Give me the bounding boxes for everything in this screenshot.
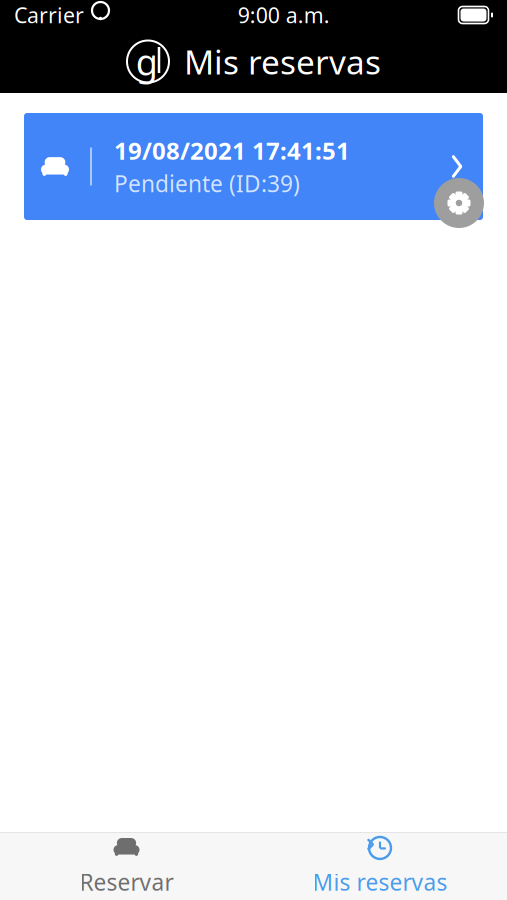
staticText: Mis reservas [184, 39, 381, 84]
staticText: g [136, 38, 158, 85]
staticText: 9:00 a.m. [238, 1, 330, 29]
button[interactable]: Reservar [0, 832, 253, 900]
staticText: Reservar [79, 867, 173, 897]
staticText: Pendiente (ID:39) [114, 168, 300, 198]
staticText: 19/08/2021 17:41:51 [114, 134, 350, 166]
button[interactable]: Opciones de la reserva [433, 177, 485, 229]
staticText: Carrier [14, 1, 84, 29]
button[interactable]: 19/08/2021 17:41:51 [24, 113, 483, 220]
staticText: Mis reservas [312, 867, 447, 897]
button[interactable]: Mis reservas [253, 832, 507, 900]
